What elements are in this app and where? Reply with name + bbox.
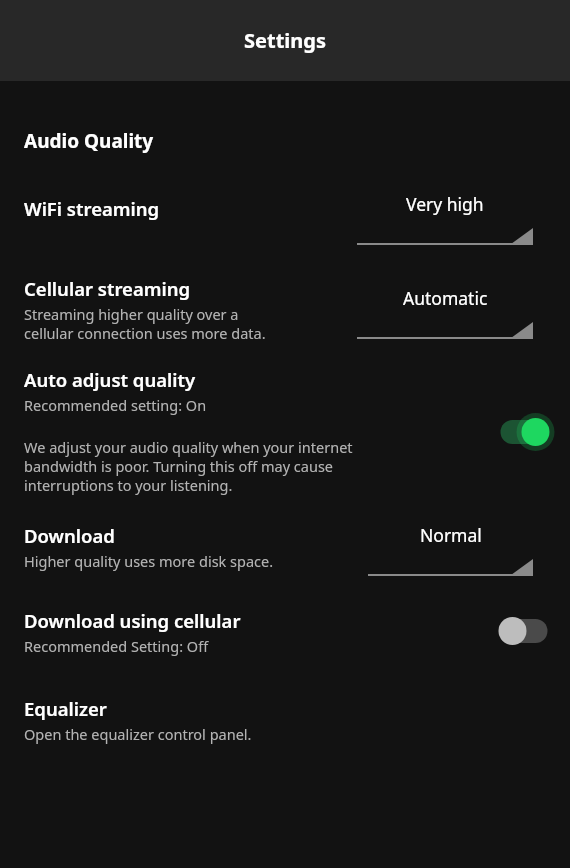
staticText: Automatic [403, 286, 488, 310]
staticText: Open the equalizer control panel. [24, 724, 252, 744]
staticText: WiFi streaming [24, 196, 160, 221]
staticText: Settings [244, 27, 326, 54]
staticText: Higher quality uses more disk space. [24, 551, 274, 571]
staticText: Equalizer [24, 696, 107, 721]
staticText: Very high [406, 192, 484, 216]
button[interactable]: Download using cellular [0, 608, 570, 656]
button[interactable]: Very high [357, 192, 533, 248]
button[interactable]: WiFi streaming [0, 192, 570, 248]
button[interactable]: Automatic [357, 286, 533, 342]
button[interactable]: Normal [368, 523, 533, 579]
button[interactable]: Download using cellular toggle, off [496, 614, 552, 648]
button[interactable]: Auto adjust quality [0, 367, 570, 495]
staticText: Audio Quality [24, 128, 154, 154]
staticText: Streaming higher quality over a cellular… [24, 304, 266, 343]
staticText: Recommended Setting: Off [24, 636, 209, 656]
button[interactable]: Cellular streaming [0, 276, 570, 343]
button[interactable]: Auto adjust quality toggle, on [496, 415, 552, 449]
button[interactable]: Equalizer [0, 696, 570, 744]
staticText: Normal [420, 523, 482, 547]
button[interactable]: Download [0, 523, 570, 579]
staticText: Download using cellular [24, 608, 241, 633]
staticText: Download [24, 523, 115, 548]
staticText: Cellular streaming [24, 276, 191, 301]
staticText: Auto adjust quality [24, 367, 196, 392]
staticText: We adjust your audio quality when your i… [24, 437, 353, 495]
staticText: Recommended setting: On [24, 395, 207, 415]
